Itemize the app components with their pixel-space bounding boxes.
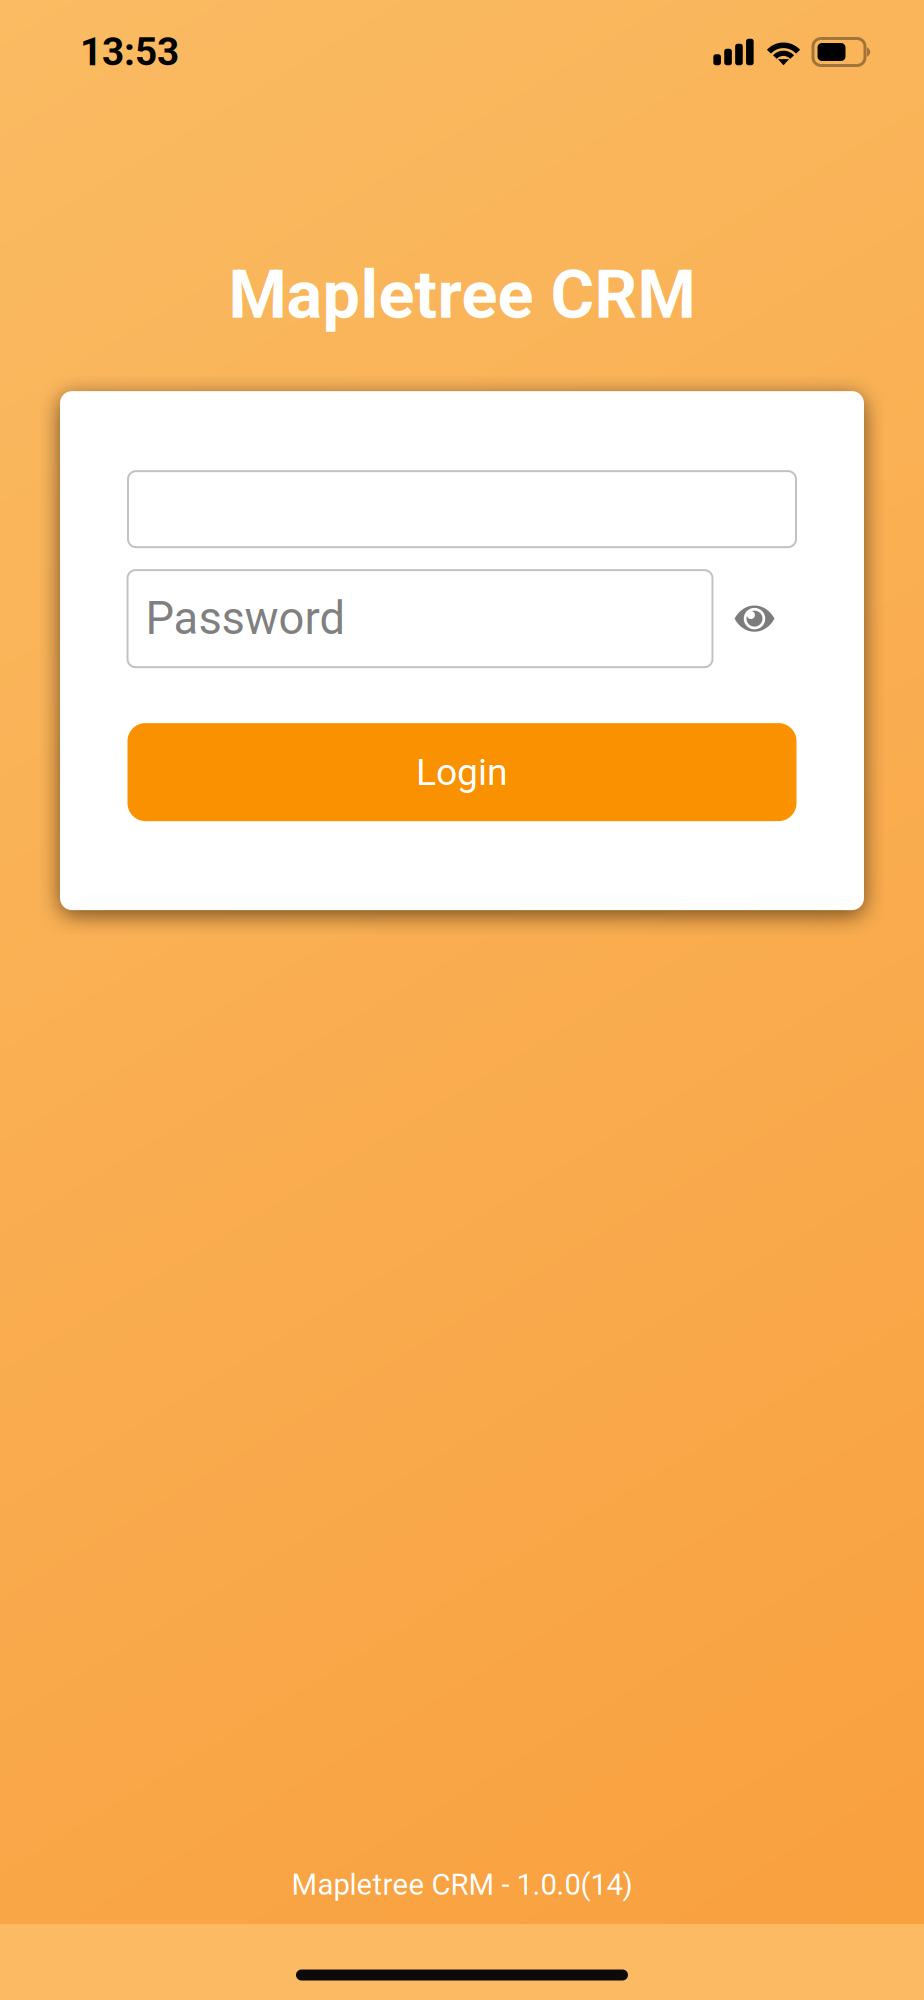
- button[interactable]: Show password: [712, 577, 796, 661]
- staticText: Password: [145, 592, 345, 645]
- staticText: Mapletree CRM - 1.0.0(14): [291, 1868, 632, 1902]
- staticText: Mapletree CRM: [228, 256, 695, 334]
- button[interactable]: Password: [127, 570, 712, 667]
- button[interactable]: Login: [127, 723, 796, 821]
- staticText: Login: [416, 750, 508, 794]
- button[interactable]: Username: [128, 471, 796, 547]
- staticText: 13:53: [80, 29, 179, 75]
